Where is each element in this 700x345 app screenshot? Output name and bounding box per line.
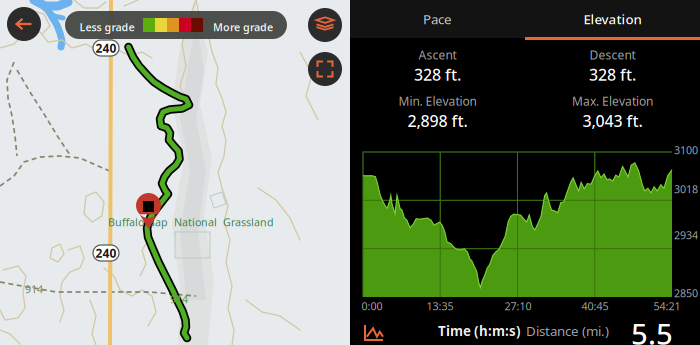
staticText: 328 ft. <box>589 64 636 85</box>
staticText: 3100 <box>674 143 698 157</box>
staticText: Distance (mi.) <box>526 322 609 340</box>
staticText: 27:10 <box>504 299 531 313</box>
staticText: 5.5 <box>631 314 673 345</box>
staticText: 240 <box>95 40 116 56</box>
staticText: 0:00 <box>361 299 382 313</box>
staticText: 13:35 <box>426 299 453 313</box>
staticText: 328 ft. <box>414 64 461 85</box>
staticText: 54:21 <box>653 299 680 313</box>
staticText: Less grade <box>79 20 134 34</box>
button[interactable]: Map layers <box>308 8 342 42</box>
staticText: Buffalo Gap National Grassland <box>108 215 274 229</box>
button[interactable]: Pace <box>350 0 525 38</box>
button[interactable]: Elevation chart <box>357 317 391 345</box>
staticText: 2934 <box>674 228 698 242</box>
staticText: 914 <box>25 282 43 296</box>
staticText: Elevation <box>583 10 641 28</box>
staticText: 3,043 ft. <box>582 110 642 131</box>
staticText: More grade <box>213 20 273 34</box>
staticText: Descent <box>589 47 635 63</box>
staticText: Max. Elevation <box>572 93 653 109</box>
staticText: 2,898 ft. <box>407 110 467 131</box>
staticText: 2850 <box>674 286 698 300</box>
staticText: 240 <box>95 245 116 261</box>
staticText: 914 <box>170 292 188 306</box>
staticText: Time (h:m:s) <box>438 322 521 340</box>
staticText: Min. Elevation <box>398 93 476 109</box>
staticText: Pace <box>423 10 452 28</box>
button[interactable]: Full screen <box>308 52 342 86</box>
staticText: 40:45 <box>581 299 608 313</box>
staticText: Ascent <box>418 47 456 63</box>
button[interactable]: Back <box>7 7 41 41</box>
staticText: 3018 <box>674 182 698 196</box>
button[interactable]: Elevation <box>525 0 700 38</box>
